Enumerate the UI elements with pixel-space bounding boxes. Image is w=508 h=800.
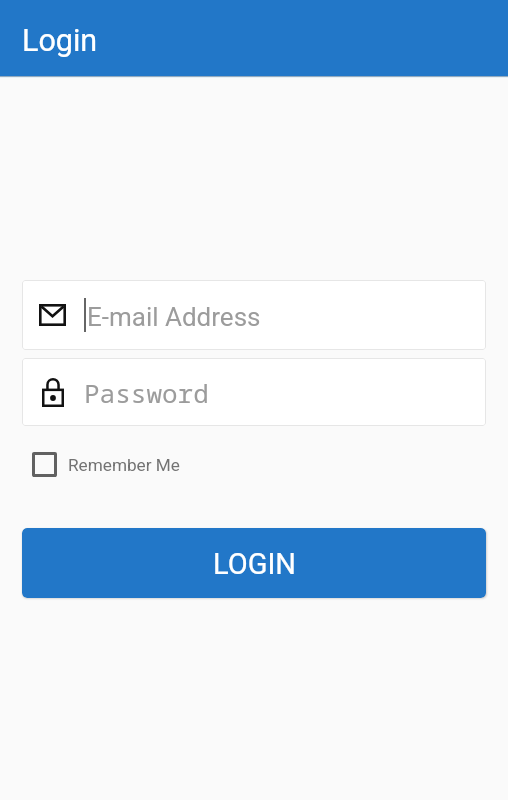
other: Password <box>42 378 64 407</box>
button[interactable]: Password <box>22 358 486 426</box>
button[interactable]: LOGIN <box>22 528 486 598</box>
staticText: Login <box>22 23 98 59</box>
other: E-mail <box>39 304 66 326</box>
button[interactable]: E-mail <box>22 280 486 350</box>
staticText: Password <box>84 375 209 410</box>
staticText: LOGIN <box>213 547 296 581</box>
staticText: E-mail Address <box>87 302 261 332</box>
button[interactable]: Remember Me <box>22 445 180 483</box>
staticText: Remember Me <box>68 455 180 475</box>
